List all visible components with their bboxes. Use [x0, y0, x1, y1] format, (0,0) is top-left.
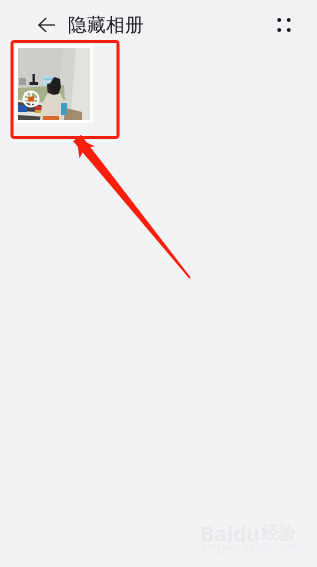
button[interactable]: Switch layout [267, 3, 301, 47]
staticText: jingyan.baidu.com [201, 539, 296, 553]
staticText: Baidu [200, 519, 260, 547]
staticText: 隐藏相册 [68, 13, 144, 36]
staticText: 经验 [261, 522, 295, 544]
button[interactable]: Back [28, 3, 66, 47]
button[interactable]: Hidden photo [15, 45, 93, 123]
